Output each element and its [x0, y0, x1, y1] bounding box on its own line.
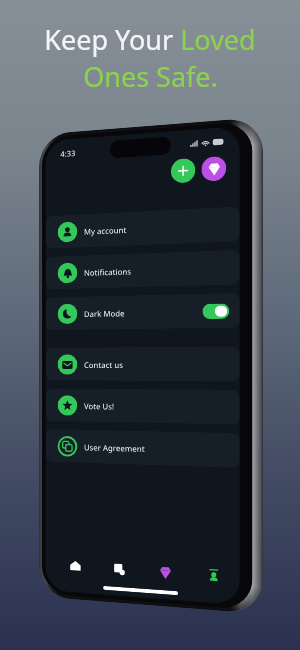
- button[interactable]: [202, 303, 229, 319]
- button[interactable]: Vote Us!: [45, 388, 240, 425]
- staticText: My account: [84, 224, 127, 237]
- button[interactable]: Home: [54, 550, 97, 582]
- button[interactable]: User Agreement: [45, 429, 240, 468]
- staticText: Dark Mode: [84, 307, 125, 319]
- button[interactable]: Reports: [97, 553, 142, 586]
- staticText: Notifications: [84, 265, 131, 278]
- button[interactable]: My account: [45, 206, 240, 249]
- staticText: Contact us: [84, 359, 123, 370]
- button[interactable]: Notifications: [45, 250, 240, 290]
- staticText: User Agreement: [84, 441, 145, 454]
- button[interactable]: Profile: [189, 559, 238, 592]
- button[interactable]: Add: [171, 158, 195, 184]
- staticText: Vote Us!: [84, 400, 115, 411]
- button[interactable]: Contact us: [45, 346, 240, 381]
- staticText: 4:33: [60, 147, 75, 159]
- staticText: Ones Safe.: [83, 58, 218, 95]
- button[interactable]: Premium: [142, 556, 189, 589]
- button[interactable]: Premium: [201, 156, 226, 182]
- button[interactable]: Dark Mode: [45, 293, 240, 330]
- staticText: Keep Your Loved: [44, 21, 256, 58]
